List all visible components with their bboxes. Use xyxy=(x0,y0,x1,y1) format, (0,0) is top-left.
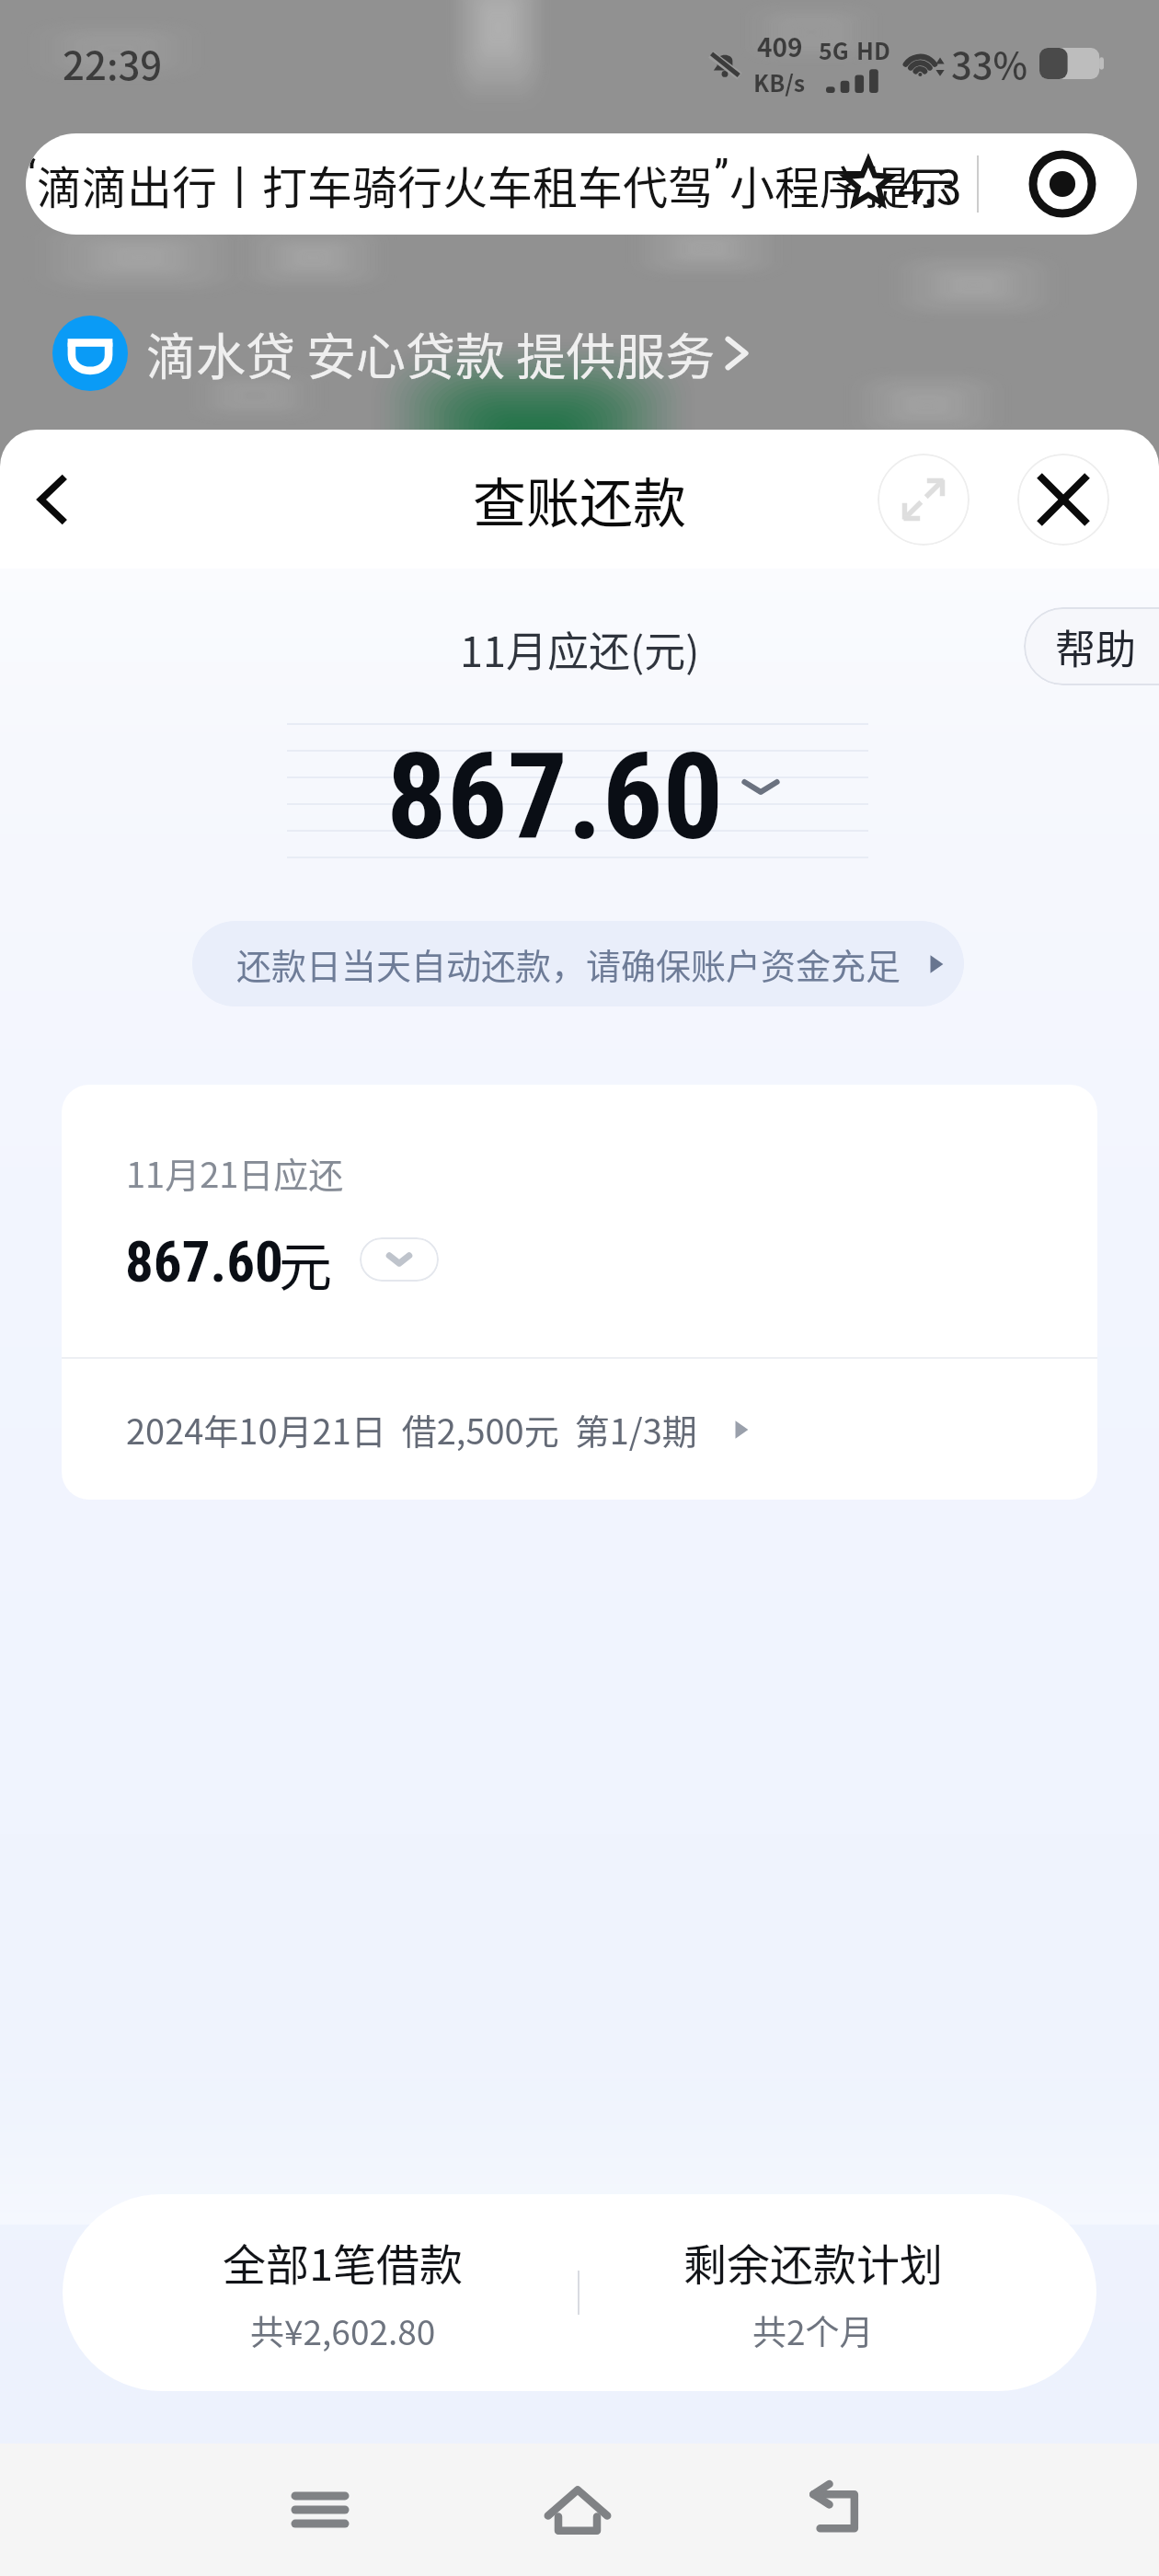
staticText: 剩余还款计划 xyxy=(683,2230,943,2293)
staticText: 滴水贷 安心贷款 提供服务 xyxy=(146,317,716,389)
staticText: 还款日当天自动还款，请确保账户资金充足 xyxy=(236,938,901,989)
staticText: 共2个月 xyxy=(752,2306,874,2355)
button[interactable]: 帮助 xyxy=(1024,607,1159,685)
button[interactable]: Back xyxy=(772,2445,901,2574)
button[interactable]: Close xyxy=(1017,454,1109,546)
button[interactable]: ‘ xyxy=(26,133,1137,235)
staticText: 22:39 xyxy=(63,35,163,91)
staticText: 867.60 xyxy=(125,1229,283,1294)
staticText: 全部1笔借款 xyxy=(223,2230,464,2293)
button[interactable]: Expand xyxy=(878,454,970,546)
staticText: 帮助 xyxy=(1055,617,1136,676)
staticText: 11月应还(元) xyxy=(460,619,700,679)
button[interactable]: 2024年10月21日 借2,500元 第1/3期 xyxy=(62,1359,1097,1500)
staticText: 33% xyxy=(951,37,1028,90)
button[interactable]: Show repayment detail xyxy=(360,1237,439,1282)
staticText: ” xyxy=(714,150,729,202)
button[interactable]: Back xyxy=(13,459,94,540)
button[interactable]: 还款日当天自动还款，请确保账户资金充足 xyxy=(192,921,964,1006)
staticText: HD xyxy=(856,33,890,66)
staticText: 5G xyxy=(819,33,849,66)
staticText: 2024年10月21日 借2,500元 第1/3期 xyxy=(126,1404,697,1455)
staticText: 共¥2,602.80 xyxy=(250,2306,436,2355)
button[interactable]: More options xyxy=(1028,150,1096,218)
staticText: 小程序提示 xyxy=(729,152,956,217)
staticText: 4.3 xyxy=(898,151,962,217)
button[interactable]: Recent apps xyxy=(256,2445,384,2574)
button[interactable]: 滴水贷 安心贷款 提供服务 xyxy=(52,316,760,391)
staticText: 元 xyxy=(279,1225,333,1302)
staticText: 11月21日应还 xyxy=(126,1147,344,1198)
staticText: KB/s xyxy=(753,65,806,98)
button[interactable]: Home xyxy=(513,2445,642,2574)
staticText: 查账还款 xyxy=(473,461,687,538)
button[interactable]: 剩余还款计划 xyxy=(556,2194,1071,2391)
staticText: 867.60 xyxy=(386,727,724,867)
button[interactable]: 全部1笔借款 xyxy=(86,2194,601,2391)
staticText: 409 xyxy=(757,28,803,65)
staticText: ‘ xyxy=(28,150,37,202)
staticText: 滴滴出行丨打车骑行火车租车代驾 xyxy=(37,152,714,217)
